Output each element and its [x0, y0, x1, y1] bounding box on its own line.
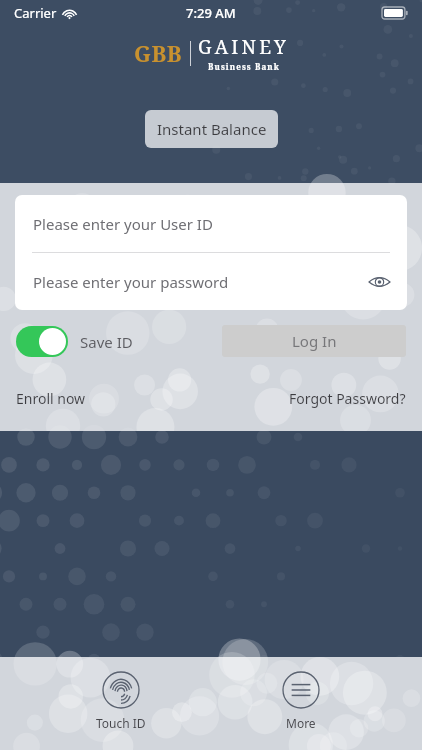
staticText: Log In: [292, 331, 337, 351]
button[interactable]: Enroll now: [16, 385, 86, 412]
button[interactable]: Please enter your User ID: [15, 195, 407, 252]
button[interactable]: Instant Balance: [145, 110, 278, 148]
button[interactable]: Forgot Password?: [289, 385, 406, 412]
staticText: Enroll now: [16, 389, 86, 408]
other: More: [282, 671, 320, 709]
button[interactable]: Log In: [222, 325, 406, 357]
staticText: Carrier: [14, 4, 57, 22]
staticText: GBB: [134, 38, 183, 68]
staticText: More: [286, 715, 316, 731]
button[interactable]: Save ID: [16, 326, 133, 357]
staticText: GAINEY: [198, 34, 289, 60]
staticText: Please enter your User ID: [33, 214, 213, 234]
staticText: 7:29 AM: [186, 4, 236, 22]
staticText: Save ID: [80, 332, 133, 352]
other: Touch ID: [102, 671, 140, 709]
staticText: Business Bank: [208, 61, 280, 72]
button[interactable]: Please enter your password: [15, 253, 407, 310]
button[interactable]: More: [241, 657, 361, 731]
staticText: Touch ID: [96, 715, 146, 731]
staticText: Instant Balance: [157, 119, 267, 139]
staticText: Forgot Password?: [289, 389, 406, 408]
button[interactable]: Touch ID: [61, 657, 181, 731]
staticText: Please enter your password: [33, 272, 229, 292]
button[interactable]: Show password: [363, 266, 395, 298]
